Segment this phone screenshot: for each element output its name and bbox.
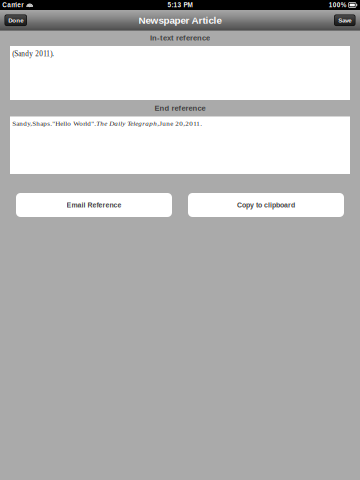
button[interactable]: Copy to clipboard <box>188 193 344 217</box>
staticText: End reference <box>154 104 205 112</box>
staticText: 5:13 PM <box>167 1 192 8</box>
staticText: Done <box>8 17 23 24</box>
staticText: Email Reference <box>66 201 121 209</box>
button[interactable]: Save <box>334 14 355 26</box>
button[interactable]: Done <box>4 14 27 26</box>
staticText: In-text reference <box>150 33 210 42</box>
staticText: Save <box>338 17 351 24</box>
button[interactable]: Email Reference <box>16 193 172 217</box>
staticText: 100% <box>329 1 347 8</box>
staticText: Newspaper Article <box>138 15 221 26</box>
staticText: (Sandy 2011). <box>12 50 54 58</box>
staticText: Copy to clipboard <box>237 201 295 209</box>
staticText: Carrier <box>2 1 23 8</box>
staticText: Sandy,Shaps."Hello World".The Daily Tele… <box>12 120 202 127</box>
